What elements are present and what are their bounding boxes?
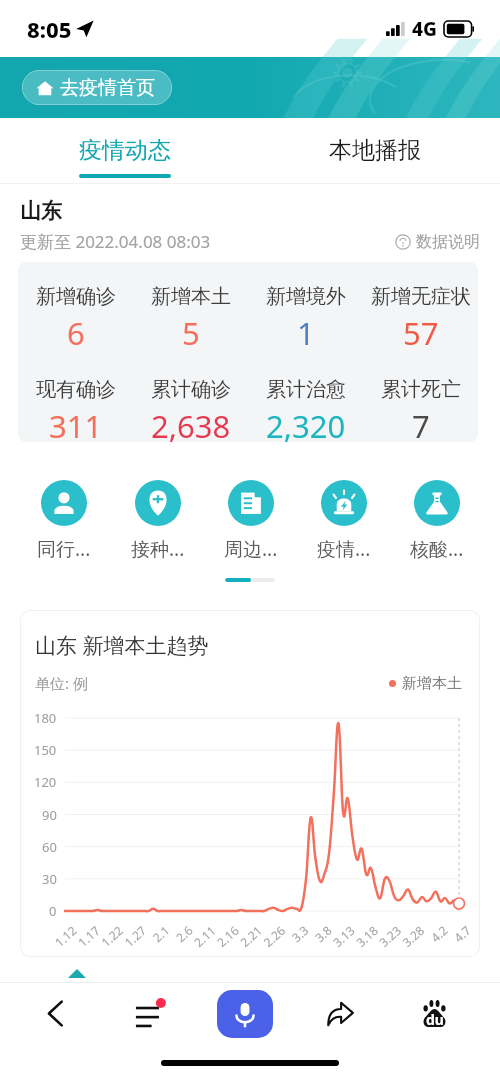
staticText: 新增确诊: [36, 284, 116, 309]
staticText: 1: [297, 312, 315, 354]
staticText: 6: [67, 312, 85, 354]
staticText: 累计死亡: [381, 377, 461, 402]
staticText: 累计确诊: [151, 377, 231, 402]
staticText: 本地播报: [329, 136, 421, 165]
staticText: 现有确诊: [36, 377, 116, 402]
button[interactable]: 同行...: [17, 480, 111, 562]
staticText: 疫情动态: [79, 136, 171, 165]
staticText: 2,638: [151, 405, 231, 442]
staticText: 新增本土: [151, 284, 231, 309]
staticText: 311: [49, 405, 103, 442]
button[interactable]: Share: [292, 983, 387, 1044]
staticText: 数据说明: [416, 232, 480, 252]
button[interactable]: 本地播报: [250, 118, 500, 184]
button[interactable]: 核酸...: [390, 480, 483, 562]
staticText: 去疫情首页: [60, 76, 155, 100]
button[interactable]: 去疫情首页: [22, 70, 172, 105]
staticText: 单位: 例: [35, 673, 88, 693]
button[interactable]: Voice search: [217, 990, 273, 1038]
staticText: 4G: [412, 16, 437, 42]
staticText: 新增本土: [402, 674, 462, 693]
staticText: 疫情...: [317, 536, 371, 562]
staticText: 8:05: [27, 14, 72, 44]
staticText: 更新至 2022.04.08 08:03: [20, 230, 211, 253]
staticText: 山东 新增本土趋势: [35, 631, 209, 660]
staticText: 核酸...: [410, 536, 464, 562]
staticText: 周边...: [224, 536, 278, 562]
button[interactable]: 疫情...: [297, 480, 390, 562]
button[interactable]: Back: [8, 983, 102, 1044]
staticText: 同行...: [37, 536, 91, 562]
button[interactable]: Menu: [102, 983, 197, 1044]
staticText: 接种...: [131, 536, 185, 562]
staticText: du: [426, 1010, 444, 1029]
button[interactable]: 数据说明: [395, 232, 480, 252]
staticText: 山东: [20, 198, 62, 224]
staticText: 新增无症状: [371, 284, 471, 309]
staticText: 7: [412, 405, 430, 442]
button[interactable]: 周边...: [204, 480, 297, 562]
button[interactable]: Baidu: [387, 983, 482, 1044]
staticText: 新增境外: [266, 284, 346, 309]
staticText: 2,320: [266, 405, 346, 442]
staticText: 57: [403, 312, 439, 354]
staticText: 累计治愈: [266, 377, 346, 402]
staticText: 5: [182, 312, 200, 354]
button[interactable]: 疫情动态: [0, 118, 250, 184]
button[interactable]: 接种...: [111, 480, 204, 562]
